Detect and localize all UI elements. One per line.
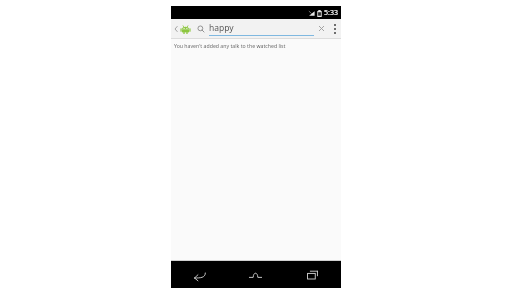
button[interactable]: Home	[227, 261, 284, 288]
staticText: You haven't added any talk to the watche…	[174, 42, 286, 49]
button[interactable]: Navigate up	[171, 19, 193, 39]
staticText: 5:33	[324, 8, 338, 18]
button[interactable]: Back	[171, 261, 227, 288]
button[interactable]: Clear query	[314, 19, 328, 39]
button[interactable]: Recent apps	[284, 261, 341, 288]
button[interactable]: More options	[328, 19, 341, 39]
staticText: happy	[209, 22, 234, 34]
button[interactable]: happy	[209, 19, 314, 39]
